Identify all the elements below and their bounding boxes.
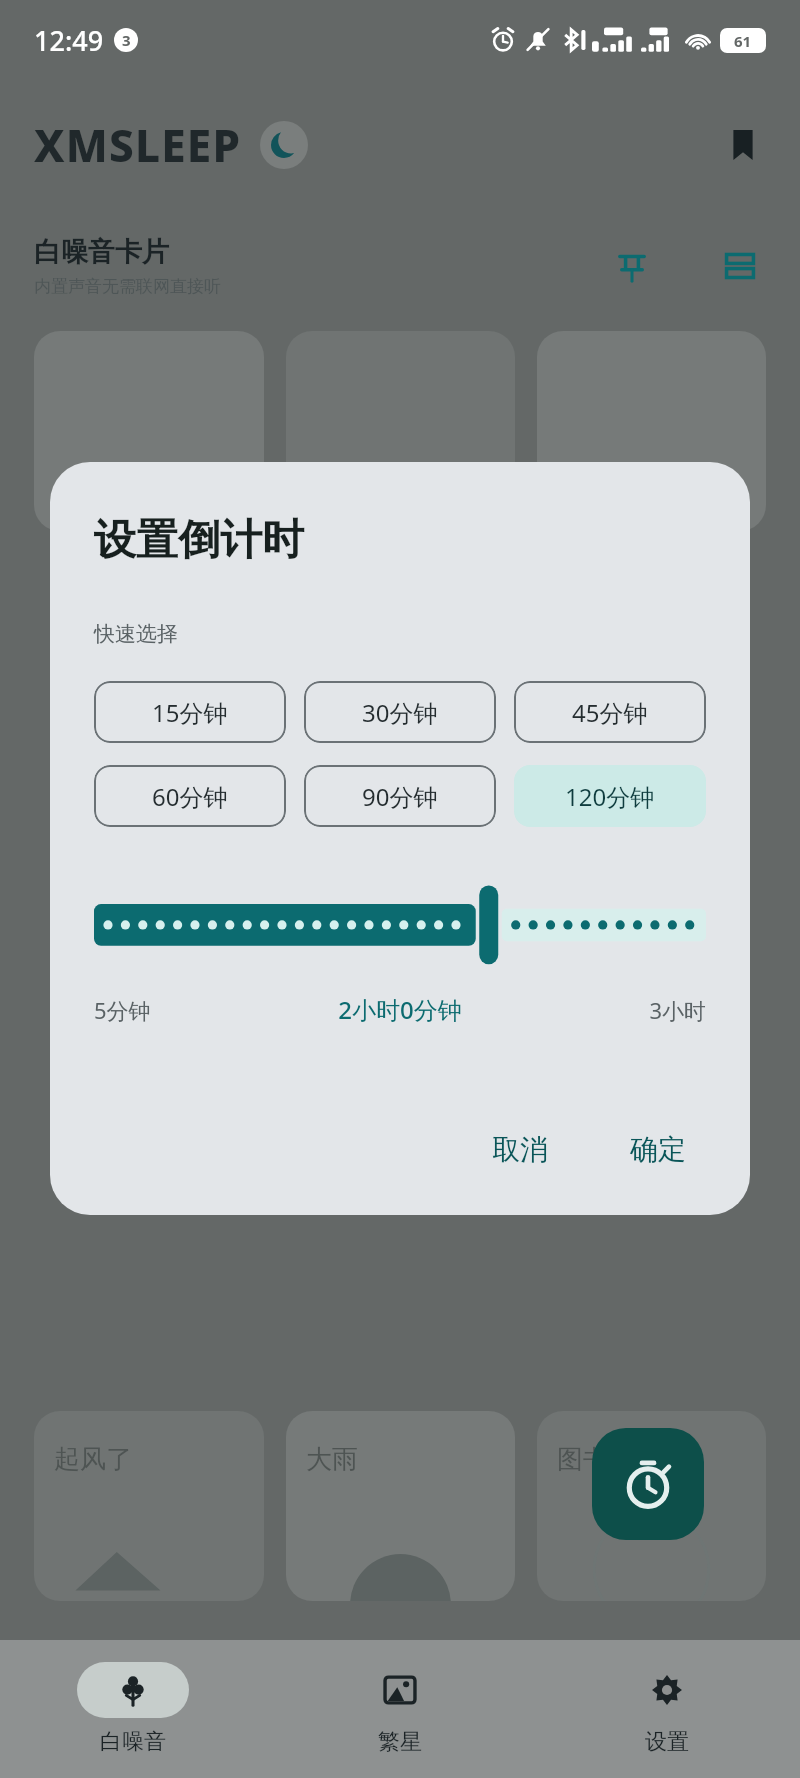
button[interactable]: 45分钟 [514,681,706,743]
button[interactable]: Layout [714,240,766,292]
staticText: 3 [122,30,131,50]
button[interactable]: 繁星 [266,1640,533,1778]
button[interactable]: 设置 [533,1640,800,1778]
staticText: 设置倒计时 [94,514,304,567]
button[interactable]: 15分钟 [94,681,286,743]
button[interactable]: 取消 [472,1118,568,1181]
button[interactable]: 白噪音 [0,1640,266,1778]
staticText: 61 [734,31,752,51]
staticText: 12:49 [34,22,104,59]
staticText: XMSLEEP [34,115,242,175]
staticText: 60分钟 [152,780,228,813]
staticText: 图书馆 [557,1443,635,1476]
staticText: 120分钟 [565,780,655,813]
staticText: 大雨 [306,1443,358,1476]
staticText: 15分钟 [152,696,228,729]
staticText: 白噪音卡片 [34,235,169,269]
button[interactable] [286,331,515,531]
button[interactable]: Bookmark [720,122,766,168]
button[interactable]: 120分钟 [514,765,706,827]
button[interactable]: 60分钟 [94,765,286,827]
button[interactable]: 起风了 [34,1411,264,1601]
staticText: 5分钟 [94,995,274,1025]
staticText: 快速选择 [94,621,178,647]
staticText: 设置 [645,1728,689,1756]
button[interactable]: Pin [606,240,658,292]
staticText: 45分钟 [572,696,648,729]
staticText: 确定 [630,1132,686,1167]
staticText: 3小时 [526,995,706,1025]
staticText: 内置声音无需联网直接听 [34,276,221,297]
button[interactable]: Duration slider [94,875,706,971]
staticText: 90分钟 [362,780,438,813]
button[interactable]: 30分钟 [304,681,496,743]
button[interactable]: 大雨 [286,1411,515,1601]
button[interactable]: Night mode [260,121,308,169]
button[interactable] [537,331,766,531]
staticText: 起风了 [54,1443,132,1476]
button[interactable]: Timer [592,1428,704,1540]
button[interactable] [34,331,264,531]
staticText: 2小时0分钟 [274,993,526,1026]
staticText: 白噪音 [100,1728,166,1756]
staticText: 30分钟 [362,696,438,729]
button[interactable]: 图书馆 [537,1411,766,1601]
staticText: 取消 [492,1132,548,1167]
button[interactable]: 90分钟 [304,765,496,827]
staticText: 繁星 [378,1728,422,1756]
button[interactable]: 确定 [610,1118,706,1181]
